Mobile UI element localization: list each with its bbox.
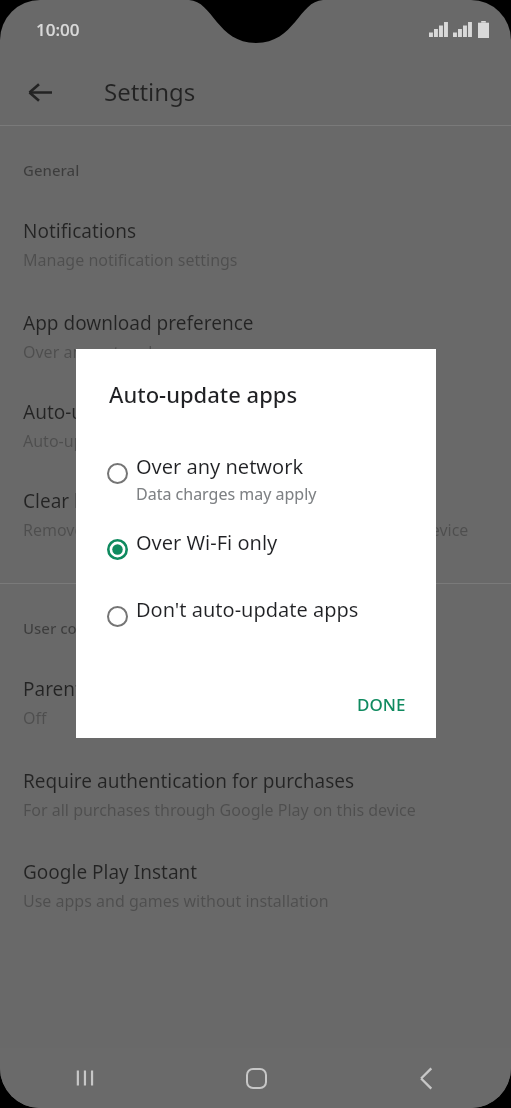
staticText: Off [23,707,47,729]
staticText: Auto-update apps over Wi-Fi only [23,430,272,452]
staticText: Use apps and games without installation [23,890,329,912]
button[interactable]: Notifications [0,218,511,271]
staticText: General [23,160,80,180]
staticText: Over any network [136,453,304,480]
button[interactable]: Over any network [76,449,436,509]
staticText: 10:00 [36,18,80,41]
button[interactable]: Home [171,1048,341,1108]
button[interactable]: Parental controls [0,676,511,729]
button[interactable]: Don't auto-update apps [76,592,436,637]
staticText: Over Wi-Fi only [136,529,278,556]
staticText: Manage notification settings [23,249,238,271]
staticText: Google Play Instant [23,859,198,885]
button[interactable]: Over Wi-Fi only [76,525,436,570]
staticText: Notifications [23,218,137,244]
staticText: Don't auto-update apps [136,596,359,623]
staticText: Settings [104,75,196,108]
staticText: DONE [357,693,406,716]
button[interactable]: DONE [341,683,422,726]
button[interactable]: Auto-update apps [0,399,511,452]
staticText: Auto-update apps [109,379,298,409]
staticText: Remove all the searches you have perform… [23,519,469,541]
staticText: App download preference [23,310,254,336]
button[interactable]: Clear local search history [0,488,511,541]
staticText: Data charges may apply [136,483,317,505]
staticText: Over any network [23,341,157,363]
staticText: Parental controls [23,676,175,702]
staticText: Auto-update apps [23,399,183,425]
button[interactable]: Google Play Instant [0,859,511,912]
button[interactable]: Back [17,69,63,115]
staticText: User controls [23,618,119,638]
staticText: Clear local search history [23,488,246,514]
button[interactable]: Require authentication for purchases [0,768,511,821]
staticText: Require authentication for purchases [23,768,355,794]
button[interactable]: Recent apps [0,1048,171,1108]
staticText: For all purchases through Google Play on… [23,799,416,821]
button[interactable]: App download preference [0,310,511,363]
button[interactable]: Back [341,1048,511,1108]
